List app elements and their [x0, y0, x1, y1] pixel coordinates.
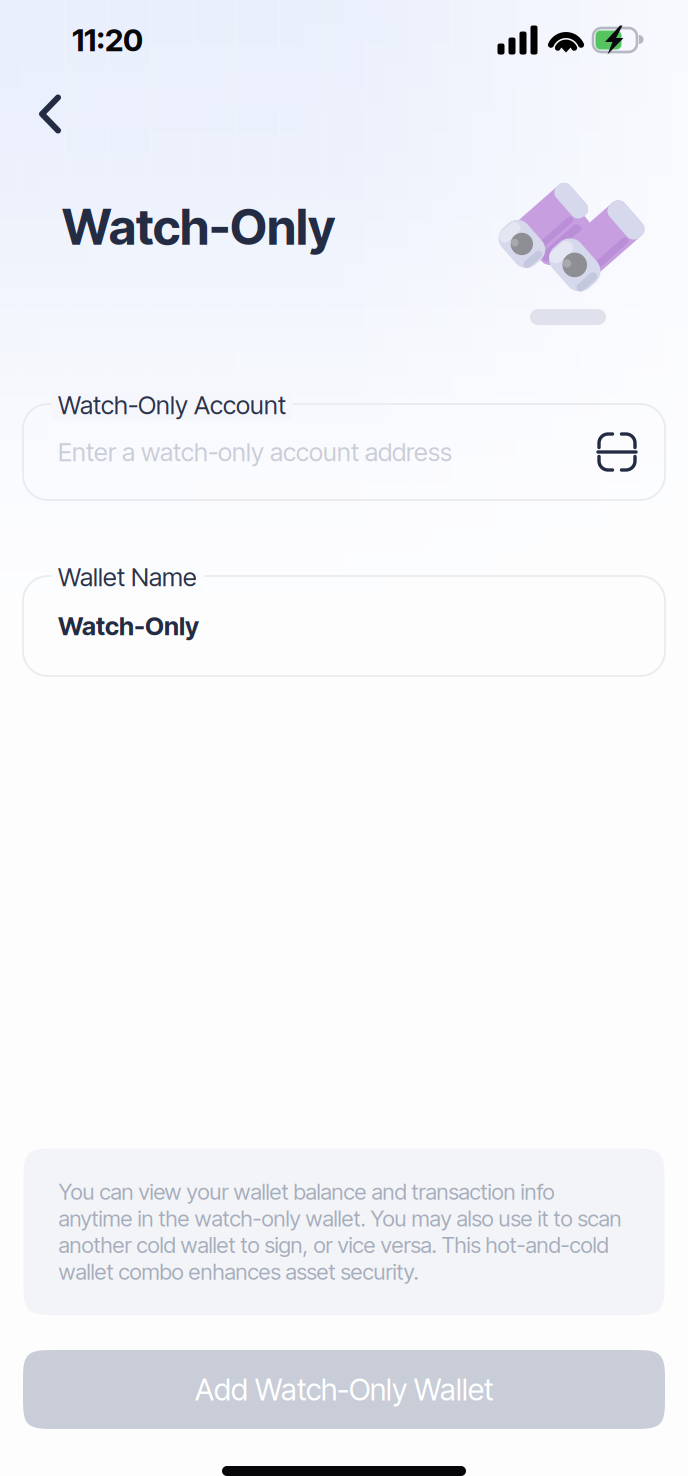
button[interactable]: Add Watch-Only Wallet	[23, 1350, 665, 1429]
staticText: Wallet Name	[58, 562, 197, 592]
staticText: Add Watch-Only Wallet	[195, 1371, 493, 1408]
staticText: Enter a watch-only account address	[58, 437, 452, 467]
button[interactable]: Back	[12, 82, 88, 146]
staticText: You can view your wallet balance and tra…	[58, 1178, 621, 1285]
button[interactable]: Scan address	[589, 424, 645, 480]
staticText: 11:20	[72, 21, 143, 58]
staticText: Watch-Only Account	[58, 390, 286, 420]
staticText: Watch-Only	[58, 611, 199, 641]
staticText: Watch-Only	[62, 197, 335, 257]
